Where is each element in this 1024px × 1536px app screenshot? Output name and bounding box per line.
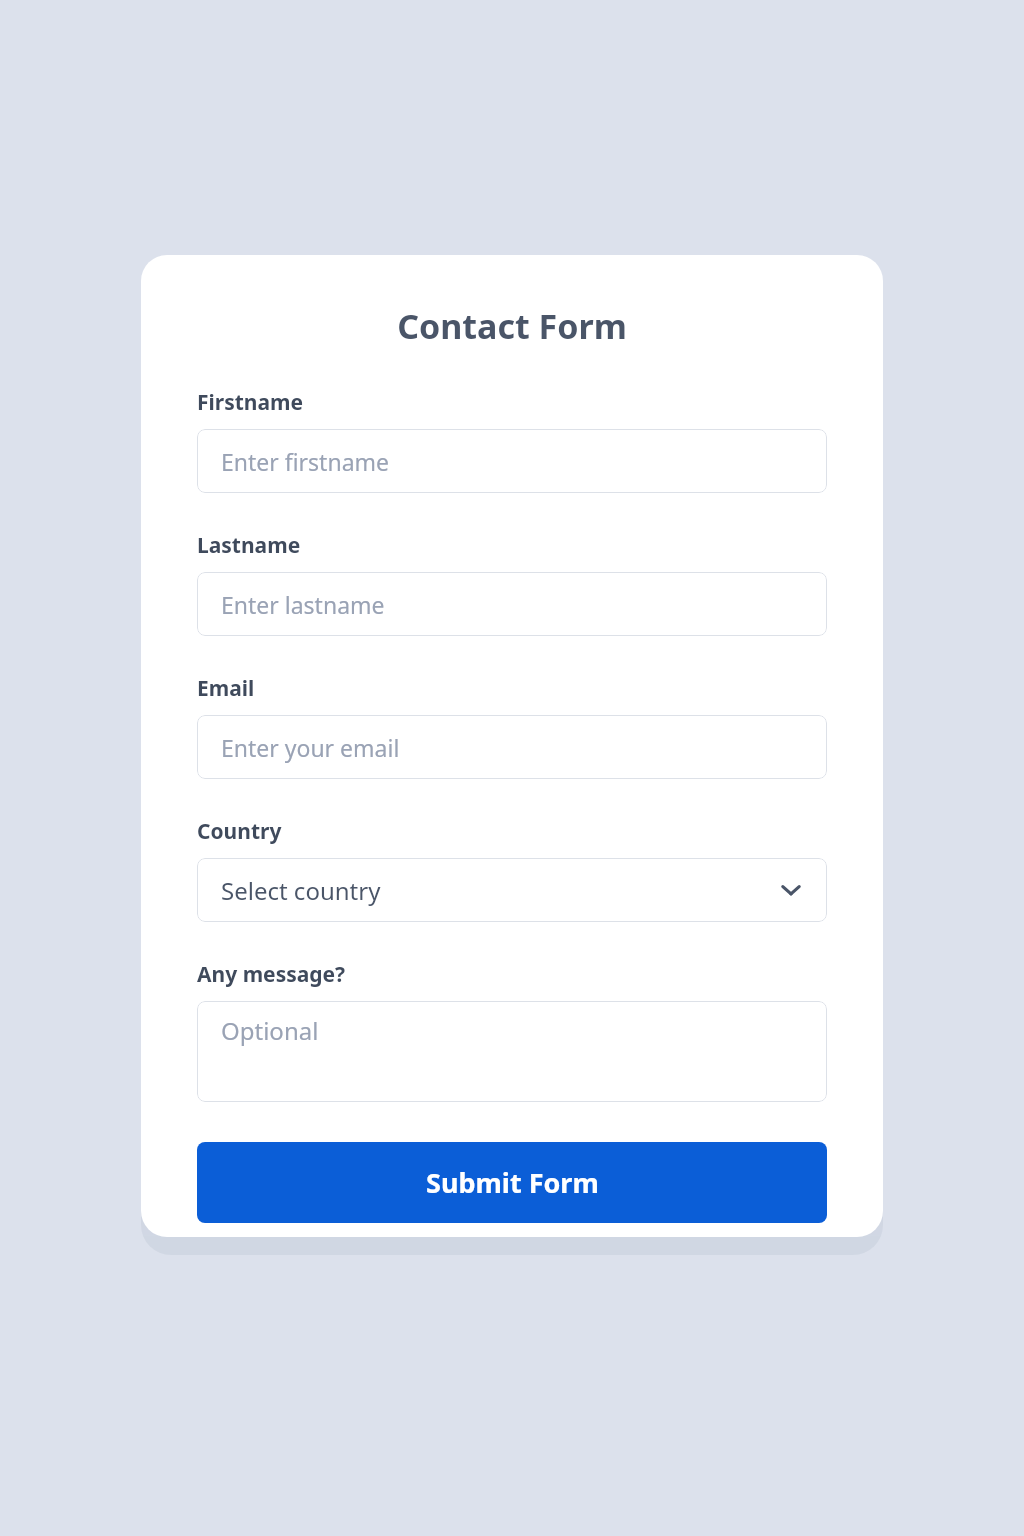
staticText: Lastname [197, 531, 301, 560]
button[interactable]: Enter lastname [197, 572, 827, 636]
staticText: Firstname [197, 388, 304, 417]
staticText: Country [197, 817, 282, 846]
staticText: Enter lastname [221, 589, 385, 620]
staticText: Any message? [197, 960, 346, 989]
staticText: Email [197, 674, 255, 703]
staticText: Enter firstname [221, 446, 390, 477]
button[interactable]: Submit Form [197, 1142, 827, 1223]
staticText: Contact Form [141, 303, 883, 349]
staticText: Select country [221, 874, 381, 907]
button[interactable]: Enter your email [197, 715, 827, 779]
staticText: Submit Form [426, 1164, 599, 1201]
button[interactable]: Enter firstname [197, 429, 827, 493]
staticText: Enter your email [221, 732, 400, 763]
staticText: Optional [221, 1014, 319, 1047]
button[interactable]: Optional [197, 1001, 827, 1102]
button[interactable]: Select country [197, 858, 827, 922]
